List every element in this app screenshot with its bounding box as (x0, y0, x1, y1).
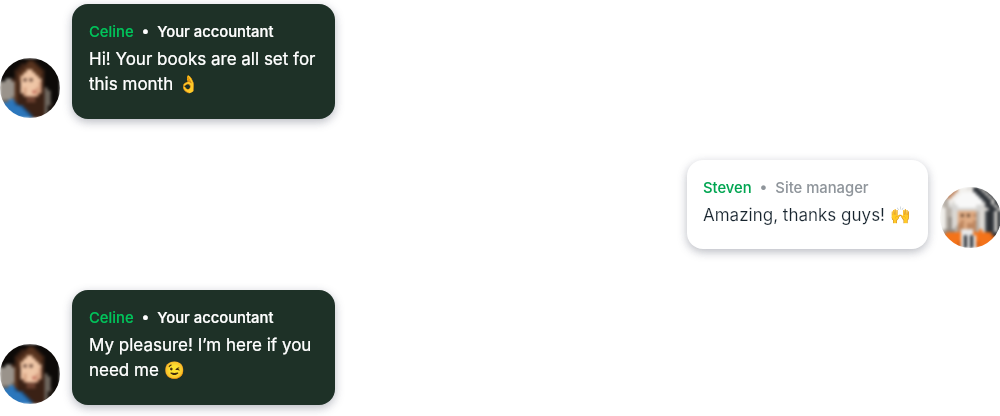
staticText: Celine • Your accountant (89, 309, 274, 327)
button[interactable]: Celine profile photo (0, 58, 60, 118)
button[interactable]: Celine profile photo (0, 344, 60, 404)
button[interactable]: Celine • Your accountant (72, 4, 335, 119)
button[interactable]: Steven • Site manager (687, 160, 928, 249)
staticText: Celine • Your accountant (89, 23, 274, 41)
staticText: Steven • Site manager (703, 179, 869, 197)
staticText: Amazing, thanks guys! 🙌 (703, 205, 911, 226)
button[interactable]: Celine • Your accountant (72, 290, 335, 405)
button[interactable]: Steven profile photo (940, 187, 1000, 248)
staticText: Hi! Your books are all set for this mont… (89, 49, 319, 94)
staticText: My pleasure! I’m here if you need me 😉 (89, 335, 319, 380)
